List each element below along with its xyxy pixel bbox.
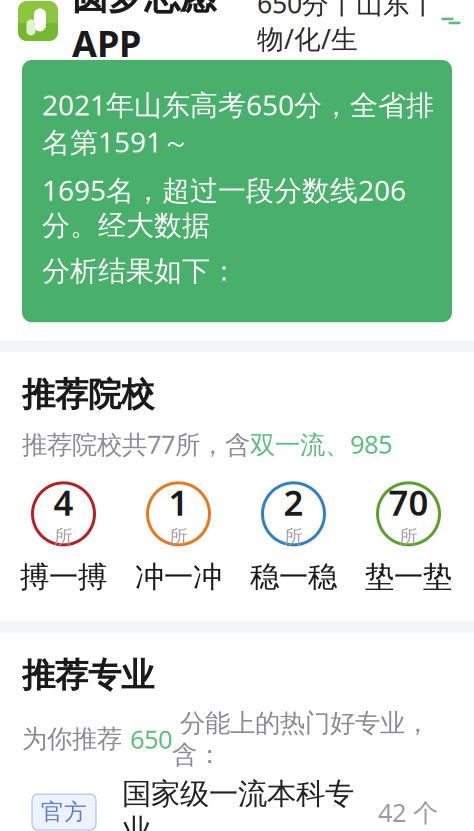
staticText: 双一流、985 — [250, 427, 392, 461]
button[interactable]: 4 — [6, 483, 121, 595]
staticText: 2021年山东高考650分，全省排名第1591～ — [42, 86, 434, 160]
staticText: 2 — [283, 479, 303, 525]
staticText: 垫一垫 — [365, 559, 452, 595]
button[interactable]: 官方 — [0, 784, 474, 831]
staticText: 4 — [53, 479, 73, 525]
staticText: 推荐专业 — [22, 655, 154, 696]
staticText: 官方 — [41, 798, 87, 826]
staticText: 稳一稳 — [250, 559, 337, 595]
staticText: 推荐院校共77所，含 — [22, 427, 250, 461]
staticText: 国家级一流本科专业 — [122, 776, 354, 831]
staticText: 42 个 — [378, 795, 438, 829]
staticText: 分能上的热门好专业，含： — [172, 708, 430, 770]
staticText: 所 — [54, 525, 73, 548]
staticText: 650分丨山东丨物/化/生 — [257, 0, 437, 56]
button[interactable]: 70 — [351, 483, 466, 595]
staticText: 所 — [284, 525, 303, 548]
staticText: 70 — [388, 479, 428, 525]
staticText: 1695名，超过一段分数线206分。经大数据 — [42, 171, 406, 243]
staticText: 所 — [169, 525, 188, 548]
staticText: 圆梦志愿APP — [72, 0, 216, 67]
staticText: 为你推荐 — [22, 723, 130, 754]
staticText: 1 — [168, 479, 188, 525]
staticText: 650 — [130, 722, 172, 756]
staticText: 所 — [399, 525, 418, 548]
button[interactable]: 1 — [121, 483, 236, 595]
button[interactable]: 650分丨山东丨物/化/生 — [257, 0, 460, 56]
staticText: 搏一搏 — [20, 559, 107, 595]
button[interactable]: 2 — [236, 483, 351, 595]
staticText: 推荐院校 — [22, 374, 154, 415]
staticText: 冲一冲 — [135, 559, 222, 595]
staticText: 分析结果如下： — [42, 254, 238, 288]
